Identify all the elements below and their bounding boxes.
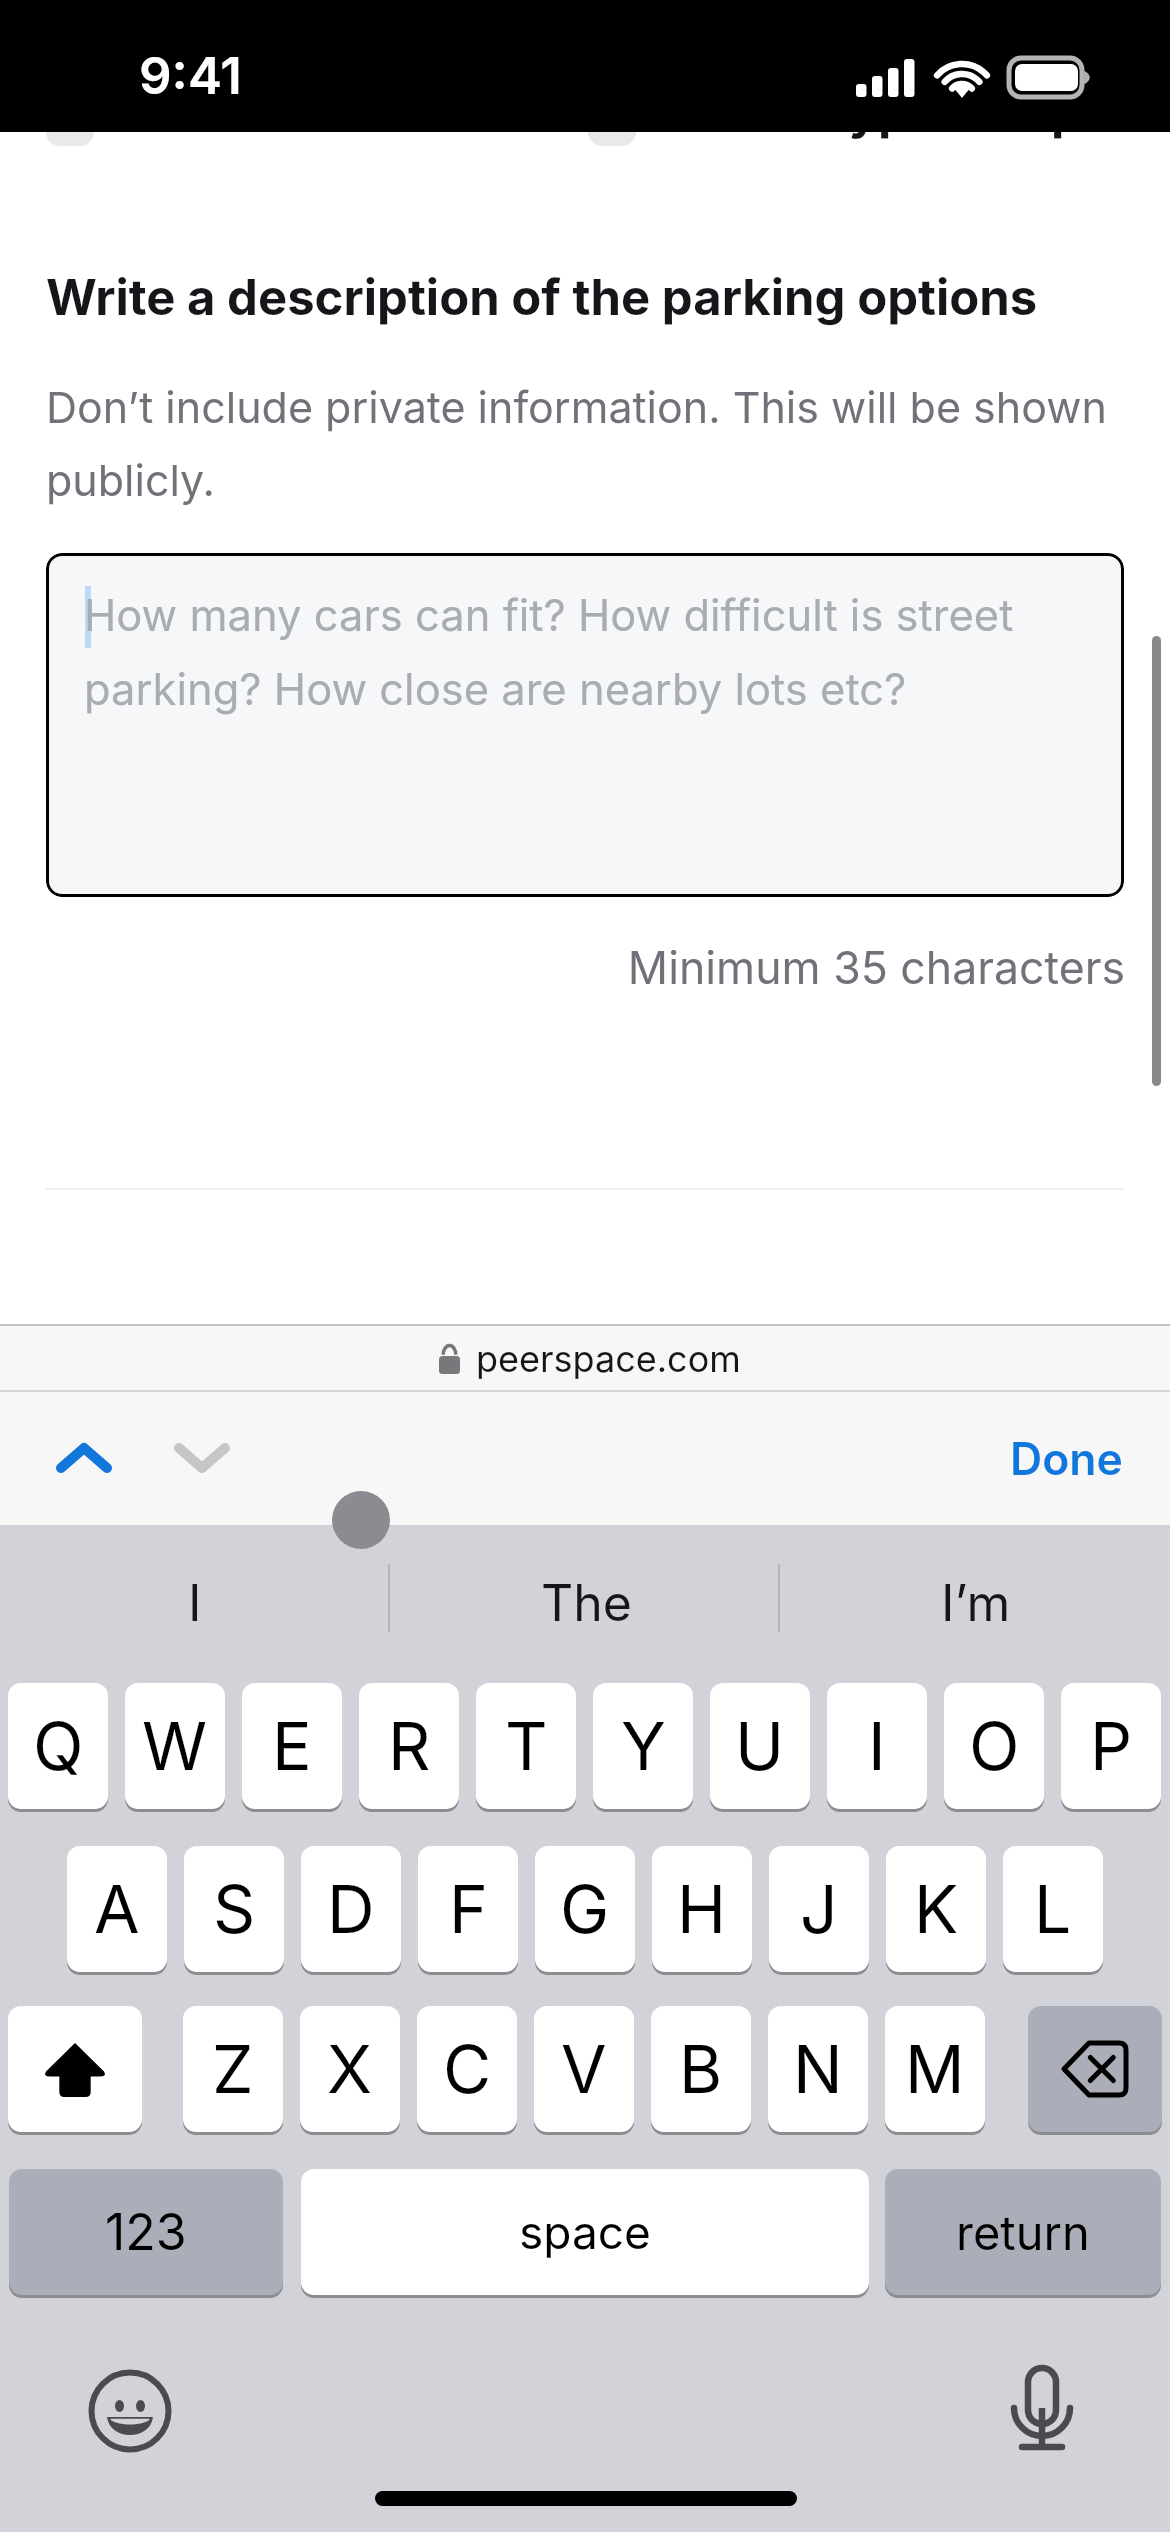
staticText: Don’t include private information. This … (46, 381, 1121, 507)
staticText: U (735, 1706, 785, 1786)
button[interactable]: G (535, 1846, 635, 1972)
button[interactable]: Done (976, 1409, 1156, 1509)
staticText: Done (1010, 1432, 1123, 1486)
staticText: R (388, 1706, 431, 1786)
staticText: L (1034, 1869, 1072, 1949)
staticText: F (449, 1869, 488, 1949)
staticText: I’m (941, 1573, 1011, 1633)
button[interactable]: A (67, 1846, 167, 1972)
button[interactable]: Emoji keyboard (84, 2365, 176, 2457)
staticText: The (541, 1573, 632, 1633)
button[interactable]: V (534, 2006, 634, 2132)
button[interactable]: F (418, 1846, 518, 1972)
button[interactable]: Next field (157, 1413, 247, 1503)
button[interactable]: B (651, 2006, 751, 2132)
button[interactable]: Q (8, 1683, 108, 1809)
staticText: I (188, 1573, 202, 1633)
staticText: S (213, 1869, 256, 1949)
staticText: 123 (105, 2202, 187, 2262)
staticText: K (914, 1869, 959, 1949)
button[interactable]: Z (183, 2006, 283, 2132)
button[interactable]: U (710, 1683, 810, 1809)
staticText: C (443, 2029, 492, 2109)
button[interactable]: H (652, 1846, 752, 1972)
staticText: I (868, 1706, 886, 1786)
staticText: E (272, 1706, 312, 1786)
button[interactable]: K (886, 1846, 986, 1972)
button[interactable]: 123 (9, 2169, 283, 2295)
staticText: return (956, 2204, 1090, 2261)
staticText: B (679, 2029, 723, 2109)
button[interactable]: R (359, 1683, 459, 1809)
staticText: V (561, 2029, 607, 2109)
staticText: Z (212, 2029, 254, 2109)
staticText: H (677, 1869, 727, 1949)
button[interactable]: I (5, 1543, 385, 1663)
staticText: Vehicle type and parking (640, 82, 1170, 141)
button[interactable]: The (396, 1543, 776, 1663)
button[interactable]: Shift (8, 2006, 142, 2132)
button[interactable]: S (184, 1846, 284, 1972)
staticText: D (327, 1869, 375, 1949)
staticText: O (969, 1706, 1020, 1786)
staticText: How many cars can fit? How difficult is … (84, 589, 1044, 716)
button[interactable]: L (1003, 1846, 1103, 1972)
staticText: T (505, 1706, 548, 1786)
button[interactable]: T (476, 1683, 576, 1809)
staticText: G (560, 1869, 610, 1949)
button[interactable]: X (300, 2006, 400, 2132)
staticText: Minimum 35 characters (0, 941, 1125, 995)
button[interactable]: N (768, 2006, 868, 2132)
button[interactable]: How many cars can fit? How difficult is … (46, 553, 1124, 897)
button[interactable]: I’m (786, 1543, 1166, 1663)
button[interactable]: Backspace (1028, 2006, 1162, 2132)
staticText: A (94, 1869, 140, 1949)
staticText: space (519, 2204, 651, 2260)
button[interactable]: Dictation (996, 2363, 1088, 2455)
staticText: J (800, 1869, 838, 1949)
staticText: Y (621, 1706, 666, 1786)
button[interactable]: I (827, 1683, 927, 1809)
button[interactable]: return (885, 2169, 1161, 2295)
staticText: P (1090, 1706, 1133, 1786)
staticText: Q (33, 1706, 84, 1786)
staticText: W (142, 1706, 208, 1786)
button[interactable]: Y (593, 1683, 693, 1809)
button[interactable]: W (125, 1683, 225, 1809)
staticText: peerspace.com (476, 1337, 741, 1381)
button[interactable]: space (301, 2169, 869, 2295)
staticText: N (793, 2029, 843, 2109)
staticText: Write a description of the parking optio… (46, 268, 1038, 327)
staticText: X (327, 2029, 373, 2109)
button[interactable]: P (1061, 1683, 1161, 1809)
staticText: 9:41 (139, 45, 242, 107)
button[interactable]: C (417, 2006, 517, 2132)
button[interactable]: E (242, 1683, 342, 1809)
button[interactable]: J (769, 1846, 869, 1972)
button[interactable]: O (944, 1683, 1044, 1809)
staticText: M (905, 2029, 965, 2109)
button[interactable]: Previous field (39, 1413, 129, 1503)
button[interactable]: M (885, 2006, 985, 2132)
button[interactable]: D (301, 1846, 401, 1972)
